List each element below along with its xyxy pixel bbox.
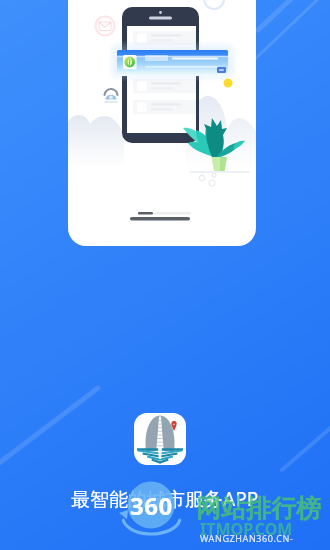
staticText: 最智能的城市服务APP [71,486,259,512]
staticText: 网站排行榜 [196,493,321,524]
staticText: 360 [130,489,173,522]
staticText: ITMOP.COM [200,518,293,540]
button[interactable]: App icon [134,413,186,465]
staticText: WANGZHAN360.CN- [200,532,294,544]
